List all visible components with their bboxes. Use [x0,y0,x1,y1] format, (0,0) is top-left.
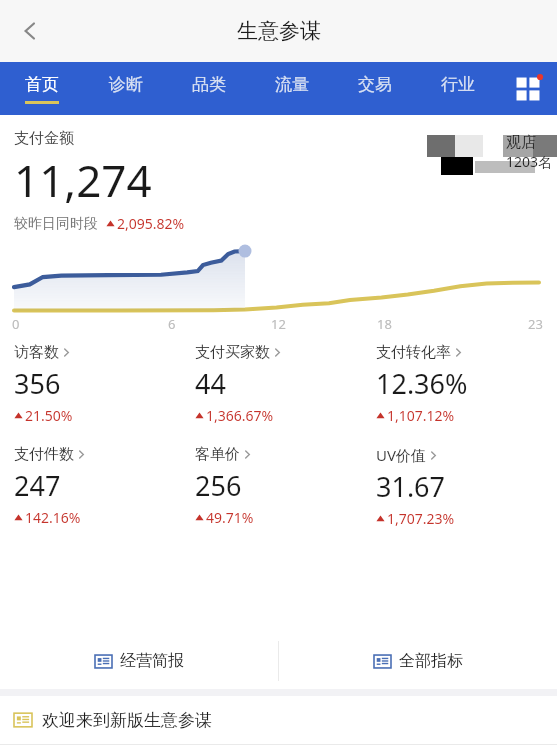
staticText: 诊断 [109,74,143,95]
staticText: 23 [528,315,543,333]
staticText: 1,366.67% [206,406,274,425]
button[interactable]: 首页 [0,62,84,115]
staticText: UV价值 [376,445,426,465]
staticText: 生意参谋 [237,18,321,44]
button[interactable]: 访客数 [14,343,195,425]
staticText: 支付金额 [14,129,74,148]
button[interactable]: 经营简报 [0,633,278,689]
button[interactable]: 行业 [416,62,499,115]
staticText: 142.16% [25,508,81,527]
button[interactable]: 客单价 [195,445,376,527]
staticText: 较昨日同时段 [14,215,98,233]
staticText: 观店 [506,133,536,152]
button[interactable]: 流量 [250,62,333,115]
button[interactable]: 诊断 [84,62,167,115]
button[interactable]: 支付买家数 [195,343,376,425]
staticText: 11,274 [14,150,152,210]
staticText: 流量 [275,74,309,95]
staticText: 0 [12,315,20,333]
staticText: 44 [195,365,226,402]
staticText: 21.50% [25,406,73,425]
staticText: 1,707.23% [387,509,455,528]
staticText: 256 [195,467,242,504]
staticText: 1203名 [506,152,553,171]
button[interactable]: 支付转化率 [376,343,557,425]
staticText: 2,095.82% [117,214,185,233]
staticText: 交易 [358,74,392,95]
staticText: 首页 [25,74,59,95]
staticText: 247 [14,467,61,504]
staticText: 12 [271,315,286,333]
button[interactable]: Back [6,7,54,55]
staticText: 支付件数 [14,445,74,464]
button[interactable]: All tools [499,62,557,115]
staticText: 访客数 [14,343,59,362]
staticText: 欢迎来到新版生意参谋 [42,710,212,731]
button[interactable]: 欢迎来到新版生意参谋 [0,696,557,744]
staticText: 31.67 [376,468,446,505]
staticText: 18 [377,315,392,333]
button[interactable]: UV价值 [376,445,557,528]
staticText: 6 [168,315,176,333]
staticText: 49.71% [206,508,254,527]
button[interactable]: 支付件数 [14,445,195,527]
staticText: 356 [14,365,61,402]
staticText: 行业 [441,74,475,95]
staticText: 品类 [192,74,226,95]
button[interactable]: 品类 [167,62,250,115]
button[interactable]: 全部指标 [279,633,557,689]
staticText: 支付买家数 [195,343,270,362]
staticText: 支付转化率 [376,343,451,362]
staticText: 12.36% [376,365,468,402]
staticText: 1,107.12% [387,406,455,425]
staticText: 全部指标 [399,651,463,671]
staticText: 客单价 [195,445,240,464]
staticText: 经营简报 [120,651,184,671]
button[interactable]: 交易 [333,62,416,115]
